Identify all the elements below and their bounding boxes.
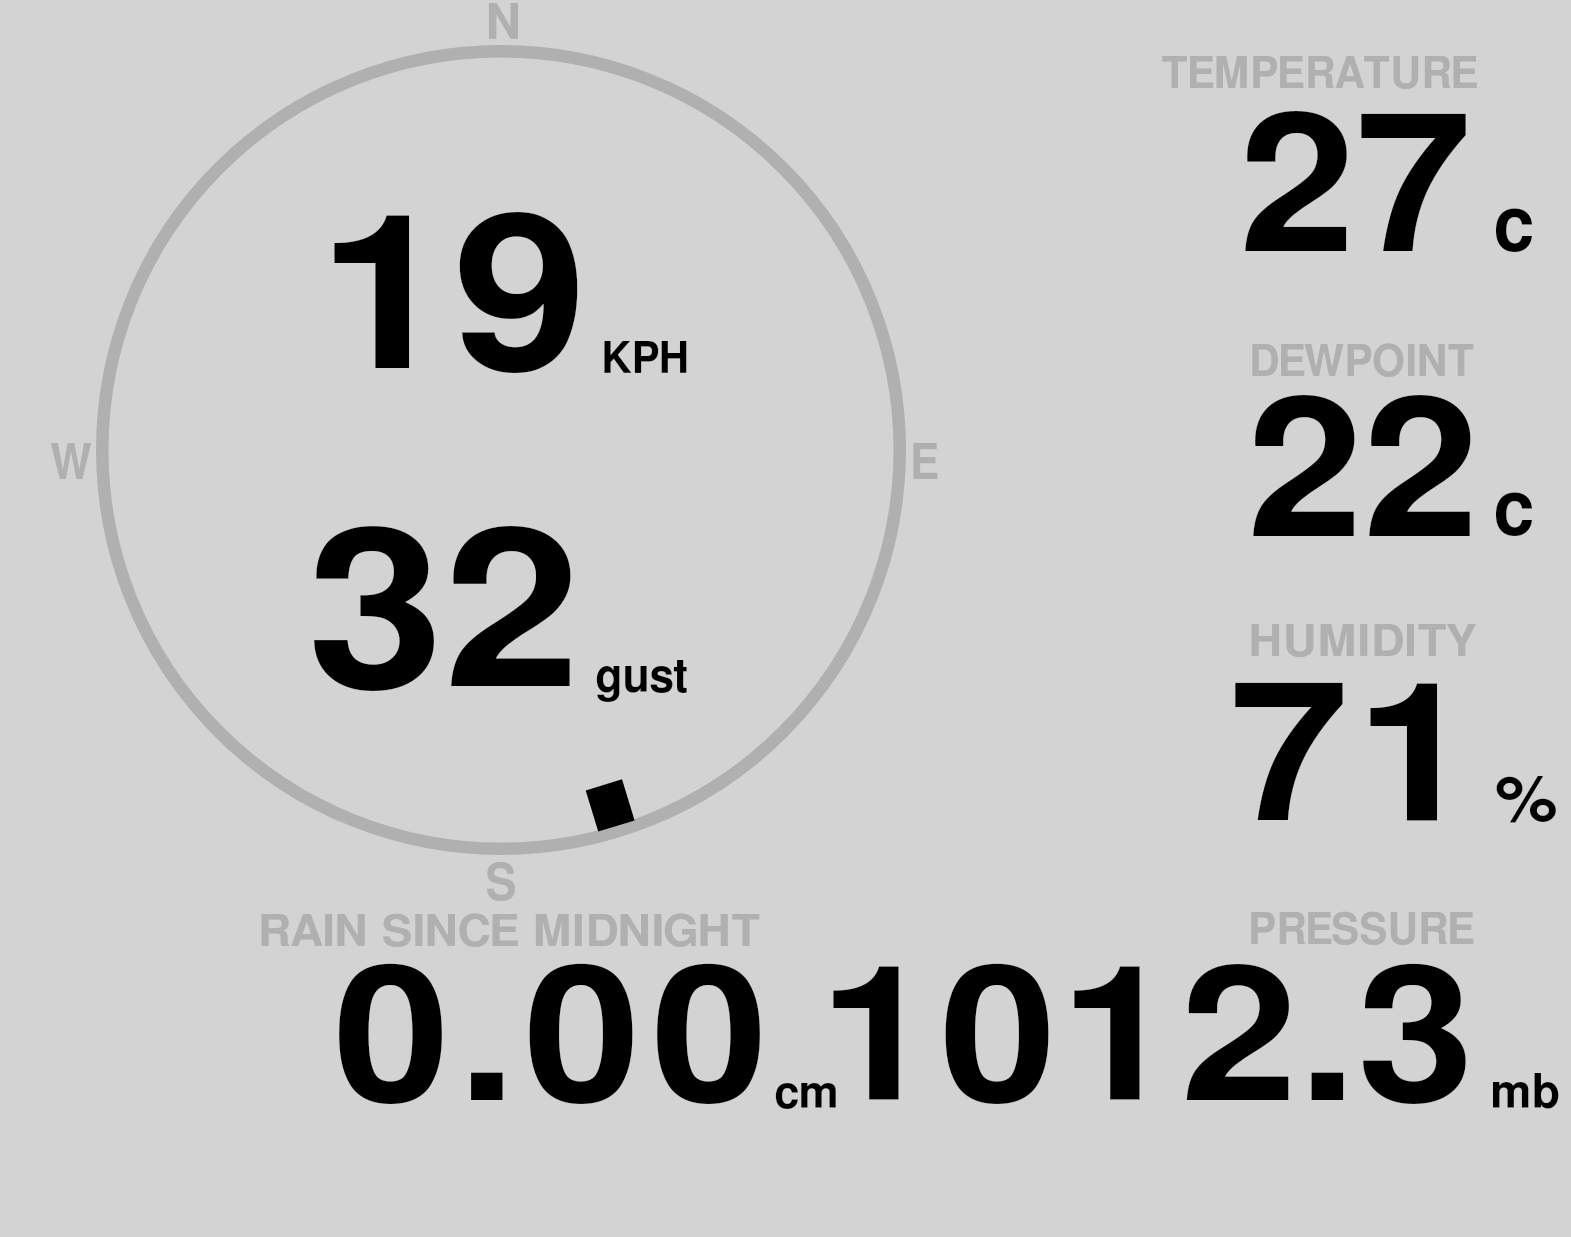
- staticText: gust: [595, 654, 689, 701]
- staticText: c: [1493, 189, 1535, 265]
- button[interactable]: Dew point 22 degrees Celsius: [1140, 320, 1571, 560]
- staticText: 1012.3: [819, 950, 1478, 1138]
- staticText: mb: [1490, 1070, 1561, 1117]
- staticText: 22: [1247, 380, 1479, 575]
- staticText: W: [50, 440, 92, 489]
- staticText: 32: [307, 510, 581, 730]
- button[interactable]: Temperature 27 degrees Celsius: [1140, 40, 1571, 280]
- button[interactable]: Pressure 1012.3 mb: [870, 900, 1570, 1120]
- staticText: TEMPERATURE: [1161, 53, 1478, 97]
- staticText: RAIN SINCE MIDNIGHT: [258, 912, 761, 955]
- button[interactable]: Wind 19 KPH, gusting 32, direction south…: [96, 40, 906, 910]
- staticText: S: [485, 860, 518, 910]
- staticText: cm: [774, 1071, 839, 1117]
- staticText: E: [910, 440, 939, 489]
- button[interactable]: Rain since midnight 0.00 cm: [240, 900, 860, 1120]
- staticText: N: [485, 0, 522, 49]
- staticText: 0.00: [333, 950, 779, 1138]
- button[interactable]: Humidity 71 percent: [1140, 600, 1571, 840]
- staticText: 27: [1239, 97, 1472, 290]
- staticText: %: [1495, 771, 1559, 834]
- staticText: 19: [318, 196, 588, 411]
- staticText: c: [1493, 473, 1535, 549]
- staticText: DEWPOINT: [1249, 341, 1475, 385]
- staticText: 71: [1229, 666, 1483, 858]
- staticText: KPH: [601, 338, 691, 382]
- staticText: PRESSURE: [1248, 910, 1475, 953]
- staticText: HUMIDITY: [1248, 621, 1477, 665]
